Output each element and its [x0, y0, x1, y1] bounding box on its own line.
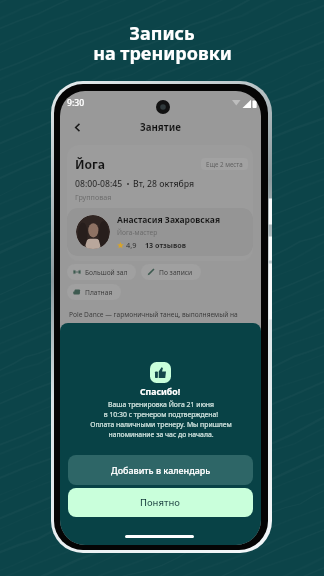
staticText: По записи — [159, 268, 193, 277]
staticText: Занятие — [140, 121, 181, 134]
staticText: Понятно — [140, 496, 181, 509]
button[interactable]: Платная — [67, 284, 121, 300]
staticText: 4,9 — [126, 240, 137, 250]
staticText: Pole Dance — гармоничный танец, выполняе… — [69, 310, 238, 319]
button[interactable]: Понятно — [68, 488, 253, 517]
staticText: Групповая — [75, 192, 112, 202]
staticText: Йога-мастер — [117, 228, 158, 237]
button[interactable]: По записи — [141, 264, 201, 280]
staticText: Вт, 28 октября — [133, 178, 195, 190]
staticText: Большой зал — [85, 268, 128, 277]
staticText: 13 отзывов — [145, 240, 186, 250]
button[interactable]: Назад — [70, 120, 85, 135]
staticText: Добавить в календарь — [111, 464, 211, 476]
button[interactable]: Большой зал — [67, 264, 136, 280]
staticText: Платная — [85, 288, 113, 297]
button[interactable]: Анастасия Захаровская — [67, 208, 253, 256]
staticText: 08:00-08:45 — [75, 178, 123, 190]
staticText: Спасибо! — [140, 386, 181, 398]
staticText: Запись — [129, 21, 195, 46]
button[interactable]: Добавить в календарь — [68, 455, 253, 485]
staticText: Ваша тренировка Йога 21 июня в 10:30 с т… — [90, 400, 232, 439]
staticText: Еще 2 места — [206, 160, 243, 168]
staticText: Анастасия Захаровская — [117, 214, 221, 226]
staticText: 9:30 — [67, 97, 85, 109]
staticText: на тренировки — [93, 41, 232, 66]
staticText: Йога — [75, 156, 106, 172]
